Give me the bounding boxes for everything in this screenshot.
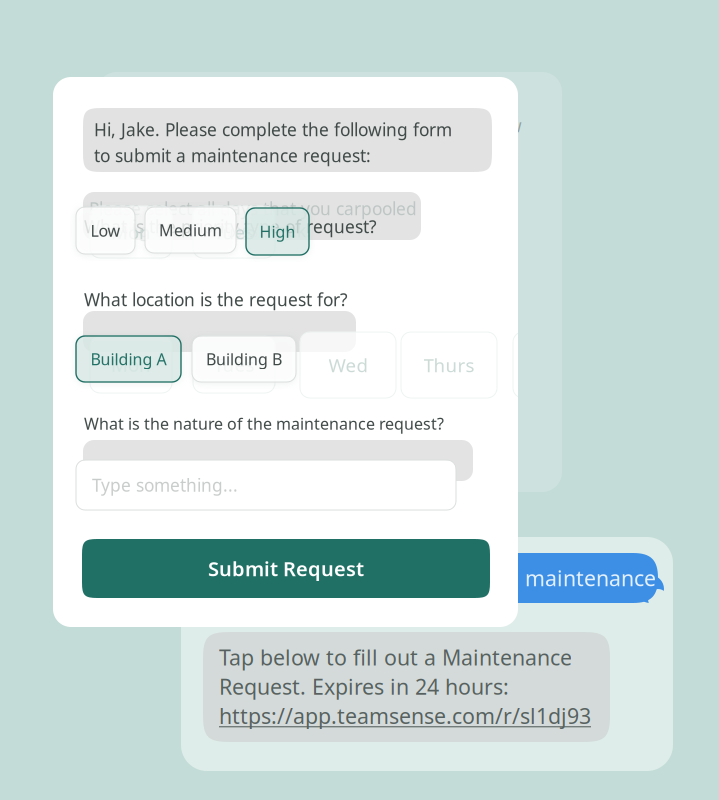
- staticText: What location is the request for?: [84, 288, 348, 311]
- staticText: Thurs: [423, 353, 474, 377]
- staticText: Tap below to fill out a Maintenance: [219, 643, 572, 671]
- staticText: Tues: [213, 220, 254, 244]
- staticText: Mon: [111, 352, 151, 377]
- button[interactable]: Submit Request: [82, 539, 490, 598]
- button[interactable]: High: [246, 208, 309, 255]
- button[interactable]: Low: [76, 207, 135, 254]
- button[interactable]: Building A: [76, 336, 181, 382]
- staticText: Submit Request: [208, 555, 364, 582]
- staticText: Fri: [549, 353, 572, 377]
- staticText: to submit a maintenance request:: [94, 144, 371, 167]
- button[interactable]: Medium: [145, 207, 236, 253]
- staticText: during the business week.: [95, 219, 311, 242]
- staticText: Tues: [213, 352, 254, 377]
- staticText: Medium: [159, 219, 222, 241]
- staticText: Type something...: [92, 473, 238, 496]
- button[interactable]: Building B: [192, 336, 296, 382]
- staticText: What is the priority type of request?: [84, 215, 377, 238]
- staticText: Hi, Jake. Please complete the following …: [94, 118, 452, 141]
- staticText: Building B: [206, 348, 282, 370]
- staticText: Request a maintenance: [420, 564, 656, 592]
- staticText: Request. Expires in 24 hours:: [219, 672, 509, 701]
- staticText: https://app.teamsense.com/r/sl1dj93: [219, 702, 591, 730]
- staticText: Please select all days that you carpoole…: [89, 197, 417, 220]
- staticText: if you'd like to change anything.: [118, 140, 379, 163]
- staticText: Wed: [328, 353, 367, 377]
- staticText: Hi, Ashley. Thanks for the heads up. Let…: [118, 114, 522, 137]
- staticText: High: [259, 221, 295, 242]
- staticText: Mon: [111, 220, 151, 244]
- staticText: Low: [90, 220, 120, 241]
- staticText: What is the nature of the maintenance re…: [84, 413, 444, 434]
- staticText: Building A: [90, 348, 166, 370]
